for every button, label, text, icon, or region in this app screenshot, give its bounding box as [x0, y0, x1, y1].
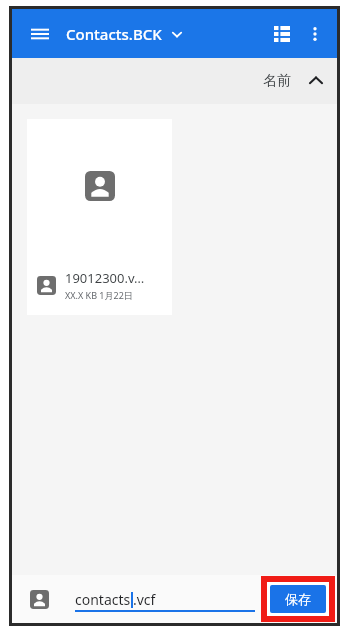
staticText: Contacts.BCK [66, 24, 162, 44]
button[interactable]: Contacts.BCK [66, 24, 184, 44]
staticText: 19012300.v… [65, 269, 145, 287]
button[interactable]: contacts [75, 582, 255, 616]
button[interactable]: 保存 [270, 585, 326, 613]
staticText: 保存 [285, 591, 311, 607]
staticText: 名前 [263, 72, 291, 90]
staticText: .vcf [133, 590, 156, 609]
staticText: contacts [75, 590, 131, 609]
button[interactable]: 19012300.v… [27, 119, 172, 315]
button[interactable]: 名前 [263, 70, 327, 92]
button[interactable]: More options [299, 18, 331, 50]
button[interactable]: Switch to list view [265, 17, 299, 51]
staticText: XX.X KB 1月22日 [65, 289, 133, 301]
button[interactable]: Open navigation drawer [24, 18, 56, 50]
